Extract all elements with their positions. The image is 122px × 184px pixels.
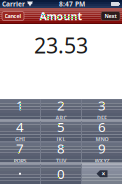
staticText: 23.53 (34, 31, 88, 59)
staticText: 8 (57, 139, 65, 157)
staticText: MNO (95, 136, 108, 143)
staticText: GHI (15, 136, 25, 143)
button[interactable]: Delete (82, 163, 122, 184)
button[interactable]: 1 (0, 99, 40, 119)
staticText: PQRS (13, 157, 26, 164)
button[interactable]: 6 (82, 120, 122, 141)
staticText: Carrier (2, 0, 25, 8)
staticText: 0 (57, 165, 65, 183)
button[interactable]: 9 (82, 142, 122, 162)
button[interactable]: Cancel (2, 11, 24, 20)
staticText: 3 (98, 96, 106, 114)
staticText: 2 (57, 96, 65, 114)
staticText: ABC (55, 114, 66, 121)
button[interactable]: 8 (41, 142, 81, 162)
staticText: JKL (56, 136, 65, 143)
staticText: Cancel (4, 12, 21, 20)
staticText: 1 (16, 96, 24, 114)
staticText: Next (104, 12, 116, 20)
staticText: TUV (56, 157, 66, 164)
button[interactable]: 3 (82, 99, 122, 119)
staticText: DEF (97, 114, 107, 121)
staticText: Amount (39, 9, 82, 23)
staticText: × (101, 169, 105, 178)
button[interactable]: 0 (41, 163, 81, 184)
staticText: 7 (16, 139, 24, 157)
staticText: 6 (98, 118, 106, 136)
button[interactable]: 7 (0, 142, 40, 162)
staticText: 9 (98, 139, 106, 157)
button[interactable]: Next (101, 11, 120, 20)
staticText: 4 (16, 118, 24, 136)
staticText: 5 (57, 118, 65, 136)
button[interactable]: 2 (41, 99, 81, 119)
staticText: 8:47 PM (59, 0, 85, 8)
button[interactable]: 4 (0, 120, 40, 141)
button[interactable]: Decimal point (0, 163, 40, 184)
staticText: WXYZ (94, 157, 109, 164)
button[interactable]: 5 (41, 120, 81, 141)
